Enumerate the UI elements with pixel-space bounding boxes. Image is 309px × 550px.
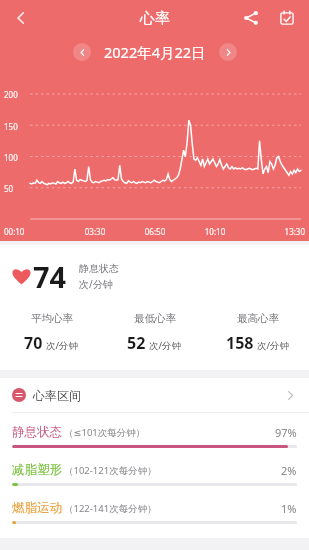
button[interactable]: 最高心率 <box>206 312 309 354</box>
staticText: 1% <box>281 501 297 516</box>
staticText: 97% <box>275 425 297 440</box>
button[interactable]: 2022年4月22日 <box>104 42 206 62</box>
staticText: 燃脂运动 <box>12 500 62 516</box>
button[interactable]: Share <box>235 2 267 34</box>
staticText: 次/分钟 <box>46 339 79 352</box>
staticText: 最高心率 <box>237 312 279 325</box>
staticText: 100 <box>4 152 18 163</box>
staticText: 50 <box>4 183 14 194</box>
staticText: 次/分钟 <box>149 339 182 352</box>
button[interactable]: Previous day <box>73 43 91 61</box>
staticText: （122-141次每分钟） <box>64 502 157 515</box>
staticText: （≤101次每分钟） <box>64 426 146 439</box>
staticText: 52 <box>127 332 146 354</box>
button[interactable]: 最低心率 <box>103 312 206 354</box>
staticText: 06:50 <box>125 226 185 237</box>
button[interactable]: 燃脂运动 <box>0 500 309 524</box>
staticText: 00:10 <box>4 226 65 237</box>
button[interactable]: Next day <box>219 43 237 61</box>
staticText: 平均心率 <box>31 312 73 325</box>
staticText: 次/分钟 <box>79 277 113 291</box>
staticText: 静息状态 <box>79 262 119 275</box>
staticText: 74 <box>33 257 67 296</box>
staticText: 158 <box>226 332 254 354</box>
staticText: 13:30 <box>245 226 305 237</box>
button[interactable]: 平均心率 <box>0 312 103 354</box>
staticText: 10:10 <box>185 226 245 237</box>
staticText: 次/分钟 <box>257 339 290 352</box>
staticText: 150 <box>4 121 18 132</box>
staticText: 03:30 <box>65 226 125 237</box>
button[interactable]: 心率区间 <box>0 378 309 412</box>
staticText: 静息状态 <box>12 424 62 440</box>
button[interactable]: 静息状态 <box>0 424 309 448</box>
button[interactable]: 74 <box>12 257 309 296</box>
staticText: （102-121次每分钟） <box>64 464 157 477</box>
staticText: 减脂塑形 <box>12 462 62 478</box>
button[interactable]: 减脂塑形 <box>0 462 309 486</box>
staticText: 200 <box>4 89 18 100</box>
staticText: 最低心率 <box>134 312 176 325</box>
staticText: 70 <box>24 332 43 354</box>
button[interactable]: Back <box>4 1 38 35</box>
staticText: 2% <box>281 463 297 478</box>
button[interactable]: Calendar <box>271 2 303 34</box>
staticText: 心率 <box>140 9 170 28</box>
staticText: 心率区间 <box>33 388 81 403</box>
